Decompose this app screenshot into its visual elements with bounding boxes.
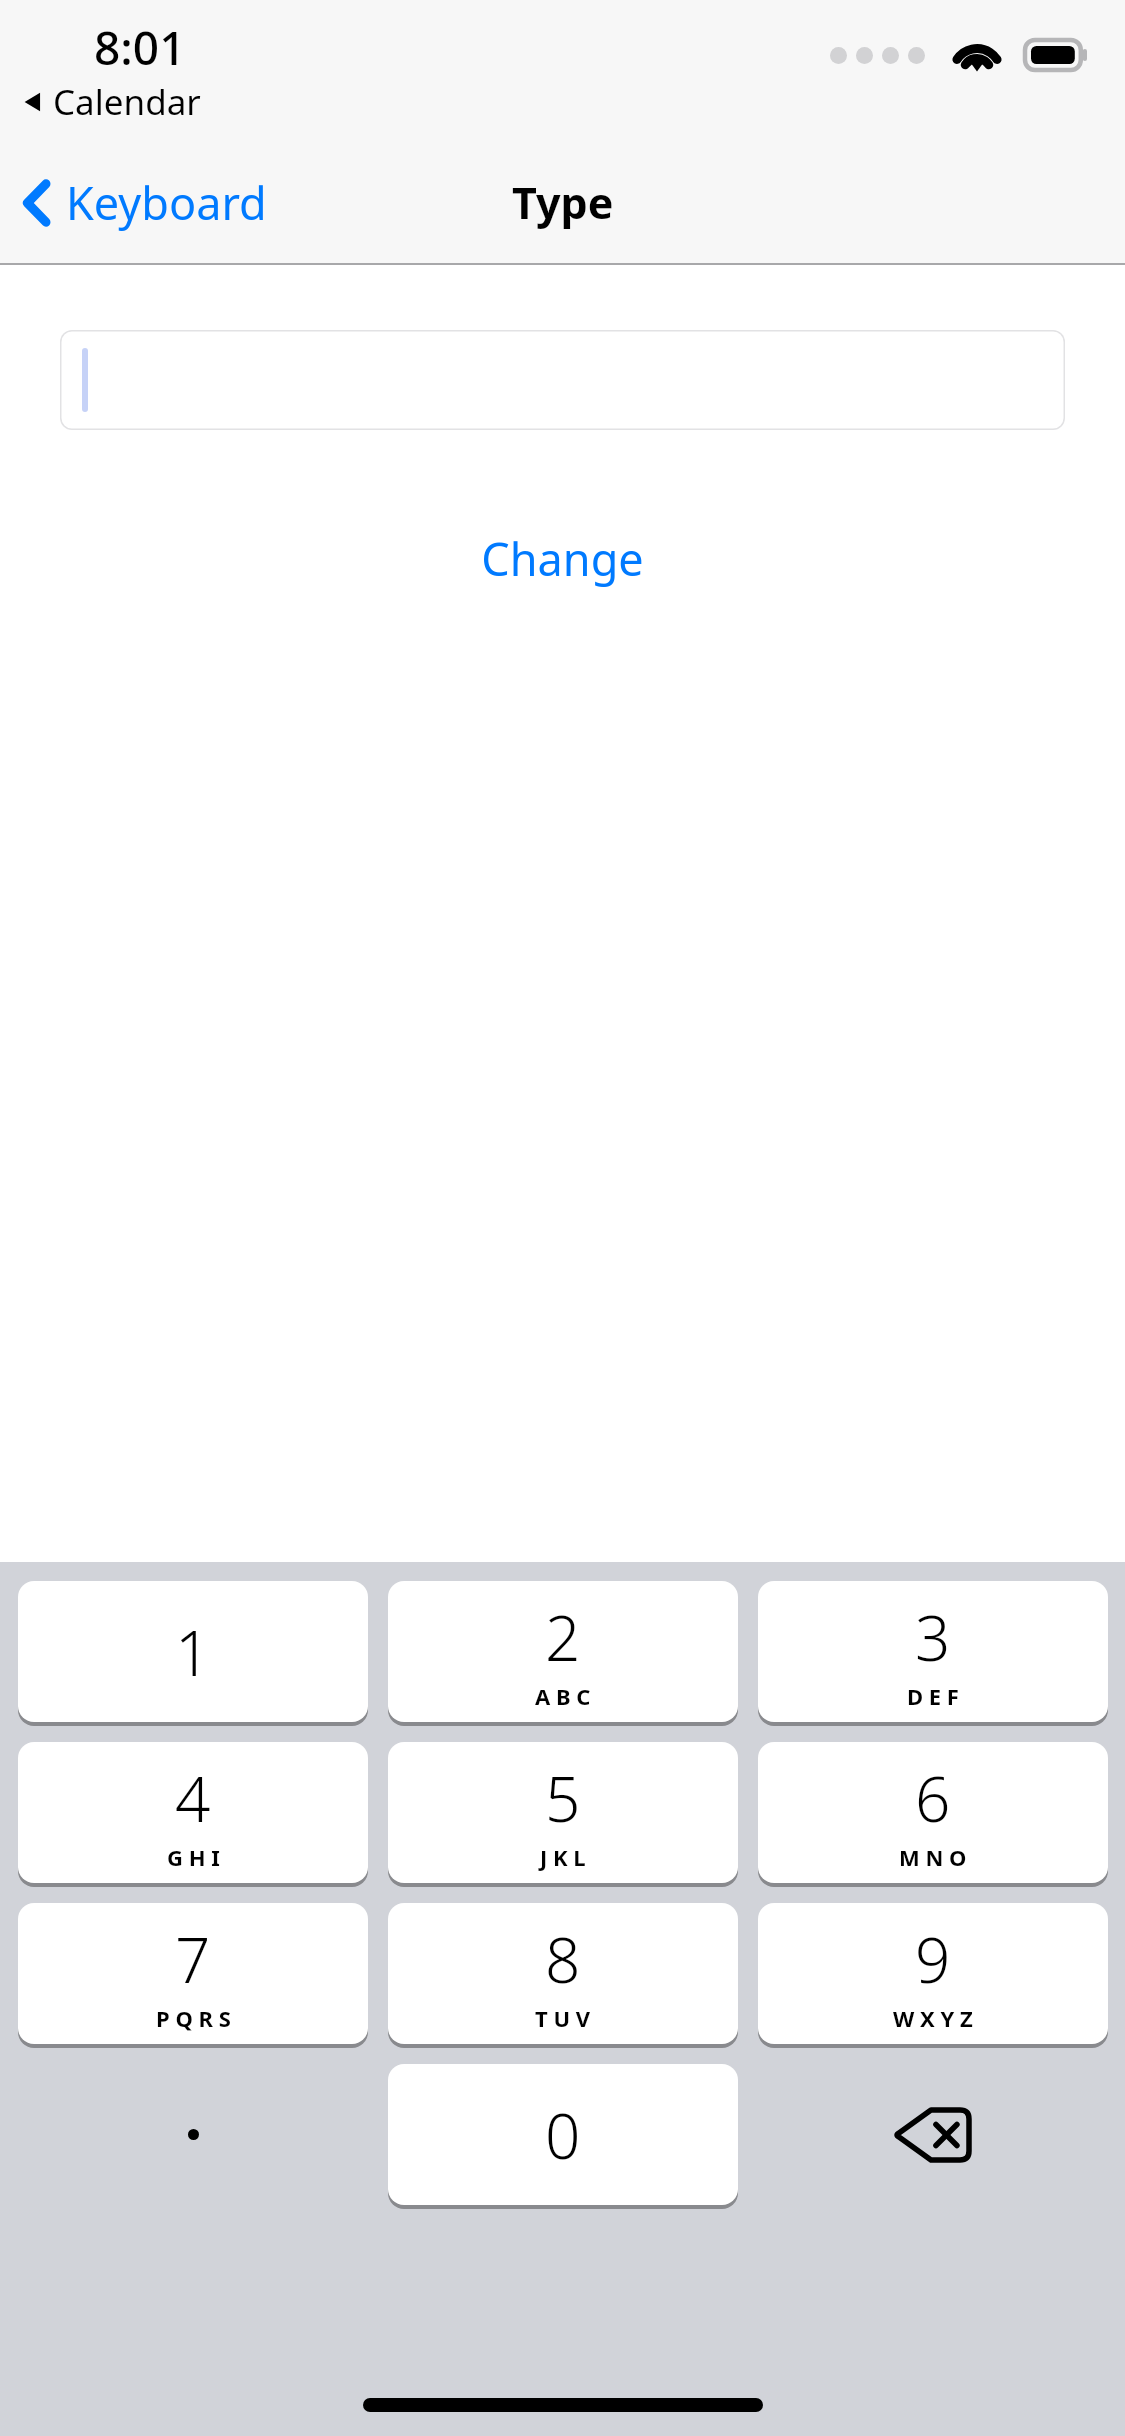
button[interactable]: 3 [758,1581,1108,1726]
button[interactable]: 5 [388,1742,738,1887]
staticText: 8:01 [94,16,186,79]
staticText: D E F [907,1681,959,1711]
button[interactable]: 6 [758,1742,1108,1887]
staticText: Type [512,173,614,232]
button[interactable] [60,330,1065,430]
button[interactable]: Calendar [22,78,201,126]
staticText: Keyboard [66,172,267,233]
button[interactable]: Keyboard [22,172,267,233]
staticText: W X Y Z [893,2003,973,2033]
button[interactable]: 1 [18,1581,368,1726]
staticText: P Q R S [156,2003,231,2033]
staticText: Calendar [53,78,201,126]
staticText: 3 [915,1595,951,1679]
staticText: 4 [175,1756,211,1840]
button[interactable]: 7 [18,1903,368,2048]
button[interactable]: 4 [18,1742,368,1887]
staticText: 8 [545,1917,581,2001]
staticText: T U V [535,2003,591,2033]
staticText: 7 [175,1917,211,2001]
staticText: Change [481,528,644,589]
button[interactable]: 2 [388,1581,738,1726]
button[interactable]: 9 [758,1903,1108,2048]
staticText: 0 [545,2093,581,2177]
staticText: 2 [545,1595,581,1679]
staticText: G H I [167,1842,220,1872]
staticText: J K L [540,1842,586,1872]
staticText: 6 [915,1756,951,1840]
staticText: A B C [535,1681,591,1711]
button[interactable]: Delete [758,2064,1108,2205]
staticText: 1 [175,1610,211,1694]
staticText: 5 [545,1756,581,1840]
staticText: M N O [899,1842,967,1872]
button[interactable]: Period [18,2064,368,2205]
button[interactable]: 0 [388,2064,738,2209]
button[interactable]: 8 [388,1903,738,2048]
button[interactable]: Change [465,520,660,597]
staticText: 9 [915,1917,951,2001]
